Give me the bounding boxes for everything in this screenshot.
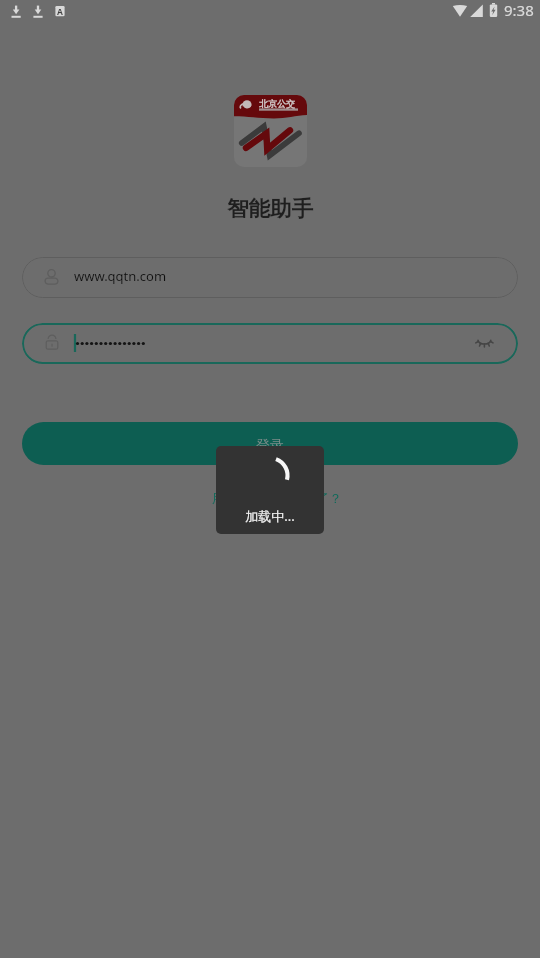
button[interactable]: www.qqtn.com <box>22 257 518 298</box>
button[interactable]: 用户名或密码忘记了？ <box>212 490 342 506</box>
staticText: 北京公交 <box>259 98 295 109</box>
button[interactable]: 登录 <box>22 422 518 465</box>
staticText: A <box>57 6 63 18</box>
staticText: 用户名或密码忘记了？ <box>212 490 342 506</box>
button[interactable]: Show password <box>22 323 518 364</box>
staticText: 登录 <box>256 437 284 455</box>
staticText: 9:38 <box>504 0 534 20</box>
button[interactable]: Show password <box>462 323 518 364</box>
staticText: www.qqtn.com <box>74 267 167 285</box>
staticText: 智能助手 <box>227 195 313 222</box>
staticText: 加载中... <box>216 507 324 525</box>
